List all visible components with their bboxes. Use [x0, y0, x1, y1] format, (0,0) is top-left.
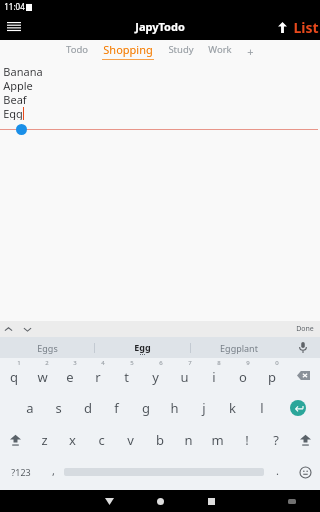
- button[interactable]: 8: [199, 358, 228, 392]
- button[interactable]: Enter: [276, 392, 320, 424]
- staticText: l: [260, 399, 264, 417]
- staticText: .: [276, 463, 279, 478]
- button[interactable]: Egg: [95, 337, 190, 358]
- staticText: u: [180, 368, 189, 386]
- button[interactable]: x: [58, 424, 87, 456]
- button[interactable]: 4: [84, 358, 112, 392]
- button[interactable]: Home: [149, 490, 171, 512]
- staticText: z: [41, 431, 48, 449]
- button[interactable]: Upload: [271, 16, 293, 38]
- button[interactable]: a: [16, 392, 44, 424]
- staticText: Banana: [3, 64, 43, 78]
- button[interactable]: 9: [228, 358, 257, 392]
- button[interactable]: 7: [170, 358, 199, 392]
- staticText: 8: [217, 359, 221, 367]
- staticText: f: [114, 399, 119, 417]
- staticText: k: [229, 399, 236, 417]
- staticText: ,: [52, 463, 55, 478]
- staticText: q: [10, 368, 18, 386]
- button[interactable]: c: [87, 424, 116, 456]
- staticText: 6: [159, 359, 163, 367]
- button[interactable]: .: [264, 456, 290, 488]
- button[interactable]: Recents: [200, 490, 222, 512]
- button[interactable]: 1: [0, 358, 28, 392]
- button[interactable]: Backspace: [286, 358, 320, 392]
- button[interactable]: 3: [56, 358, 84, 392]
- button[interactable]: Voice input: [286, 337, 320, 358]
- button[interactable]: g: [131, 392, 160, 424]
- button[interactable]: List: [293, 18, 320, 37]
- button[interactable]: Eggplant: [191, 337, 286, 358]
- button[interactable]: v: [116, 424, 145, 456]
- button[interactable]: ?123: [0, 456, 42, 488]
- staticText: ?: [273, 431, 279, 449]
- button[interactable]: h: [160, 392, 189, 424]
- button[interactable]: Previous: [4, 325, 13, 334]
- staticText: r: [95, 368, 101, 386]
- button[interactable]: f: [102, 392, 131, 424]
- staticText: Eggs: [37, 342, 58, 354]
- button[interactable]: Done: [296, 324, 314, 334]
- button[interactable]: Shift: [290, 424, 320, 456]
- button[interactable]: 0: [257, 358, 286, 392]
- button[interactable]: s: [44, 392, 73, 424]
- button[interactable]: d: [73, 392, 102, 424]
- button[interactable]: Emoji: [290, 456, 320, 488]
- button[interactable]: !: [232, 424, 261, 456]
- staticText: 7: [188, 359, 192, 367]
- button[interactable]: k: [218, 392, 247, 424]
- staticText: a: [26, 399, 34, 417]
- staticText: 11:04: [4, 1, 25, 12]
- button[interactable]: ?: [261, 424, 290, 456]
- staticText: Beaf: [3, 92, 27, 106]
- button[interactable]: Add list: [239, 40, 261, 62]
- button[interactable]: Keyboard indicator: [283, 492, 301, 510]
- staticText: n: [184, 431, 193, 449]
- button[interactable]: m: [203, 424, 232, 456]
- staticText: 9: [246, 359, 250, 367]
- staticText: w: [37, 368, 48, 386]
- button[interactable]: Work: [201, 43, 239, 59]
- staticText: 4: [101, 359, 105, 367]
- staticText: y: [152, 368, 159, 386]
- staticText: j: [202, 399, 206, 417]
- button[interactable]: 2: [28, 358, 56, 392]
- button[interactable]: Study: [161, 43, 201, 59]
- button[interactable]: Menu: [0, 13, 28, 40]
- staticText: Study: [168, 43, 194, 56]
- button[interactable]: j: [189, 392, 218, 424]
- staticText: t: [124, 368, 129, 386]
- staticText: o: [239, 368, 247, 386]
- staticText: s: [55, 399, 62, 417]
- button[interactable]: Space: [64, 456, 264, 488]
- staticText: c: [98, 431, 105, 449]
- staticText: m: [211, 431, 224, 449]
- button[interactable]: Todo: [59, 43, 95, 59]
- staticText: p: [268, 368, 276, 386]
- staticText: h: [170, 399, 179, 417]
- button[interactable]: 5: [112, 358, 141, 392]
- button[interactable]: b: [145, 424, 174, 456]
- staticText: Apple: [3, 78, 33, 92]
- button[interactable]: n: [174, 424, 203, 456]
- staticText: v: [127, 431, 134, 449]
- staticText: 2: [45, 359, 49, 367]
- button[interactable]: Back: [98, 490, 120, 512]
- button[interactable]: 6: [141, 358, 170, 392]
- staticText: e: [66, 368, 74, 386]
- button[interactable]: l: [247, 392, 276, 424]
- staticText: Done: [296, 324, 314, 334]
- staticText: 1: [17, 359, 21, 367]
- staticText: 3: [73, 359, 77, 367]
- staticText: d: [84, 399, 92, 417]
- button[interactable]: Eggs: [0, 337, 94, 358]
- button[interactable]: Shift: [0, 424, 30, 456]
- staticText: Todo: [66, 43, 88, 56]
- button[interactable]: ,: [42, 456, 64, 488]
- staticText: Egg: [134, 341, 151, 353]
- button[interactable]: Shopping: [95, 42, 161, 60]
- button[interactable]: Next: [23, 325, 32, 334]
- staticText: Work: [208, 43, 232, 56]
- button[interactable]: z: [30, 424, 58, 456]
- staticText: Egg: [3, 106, 23, 120]
